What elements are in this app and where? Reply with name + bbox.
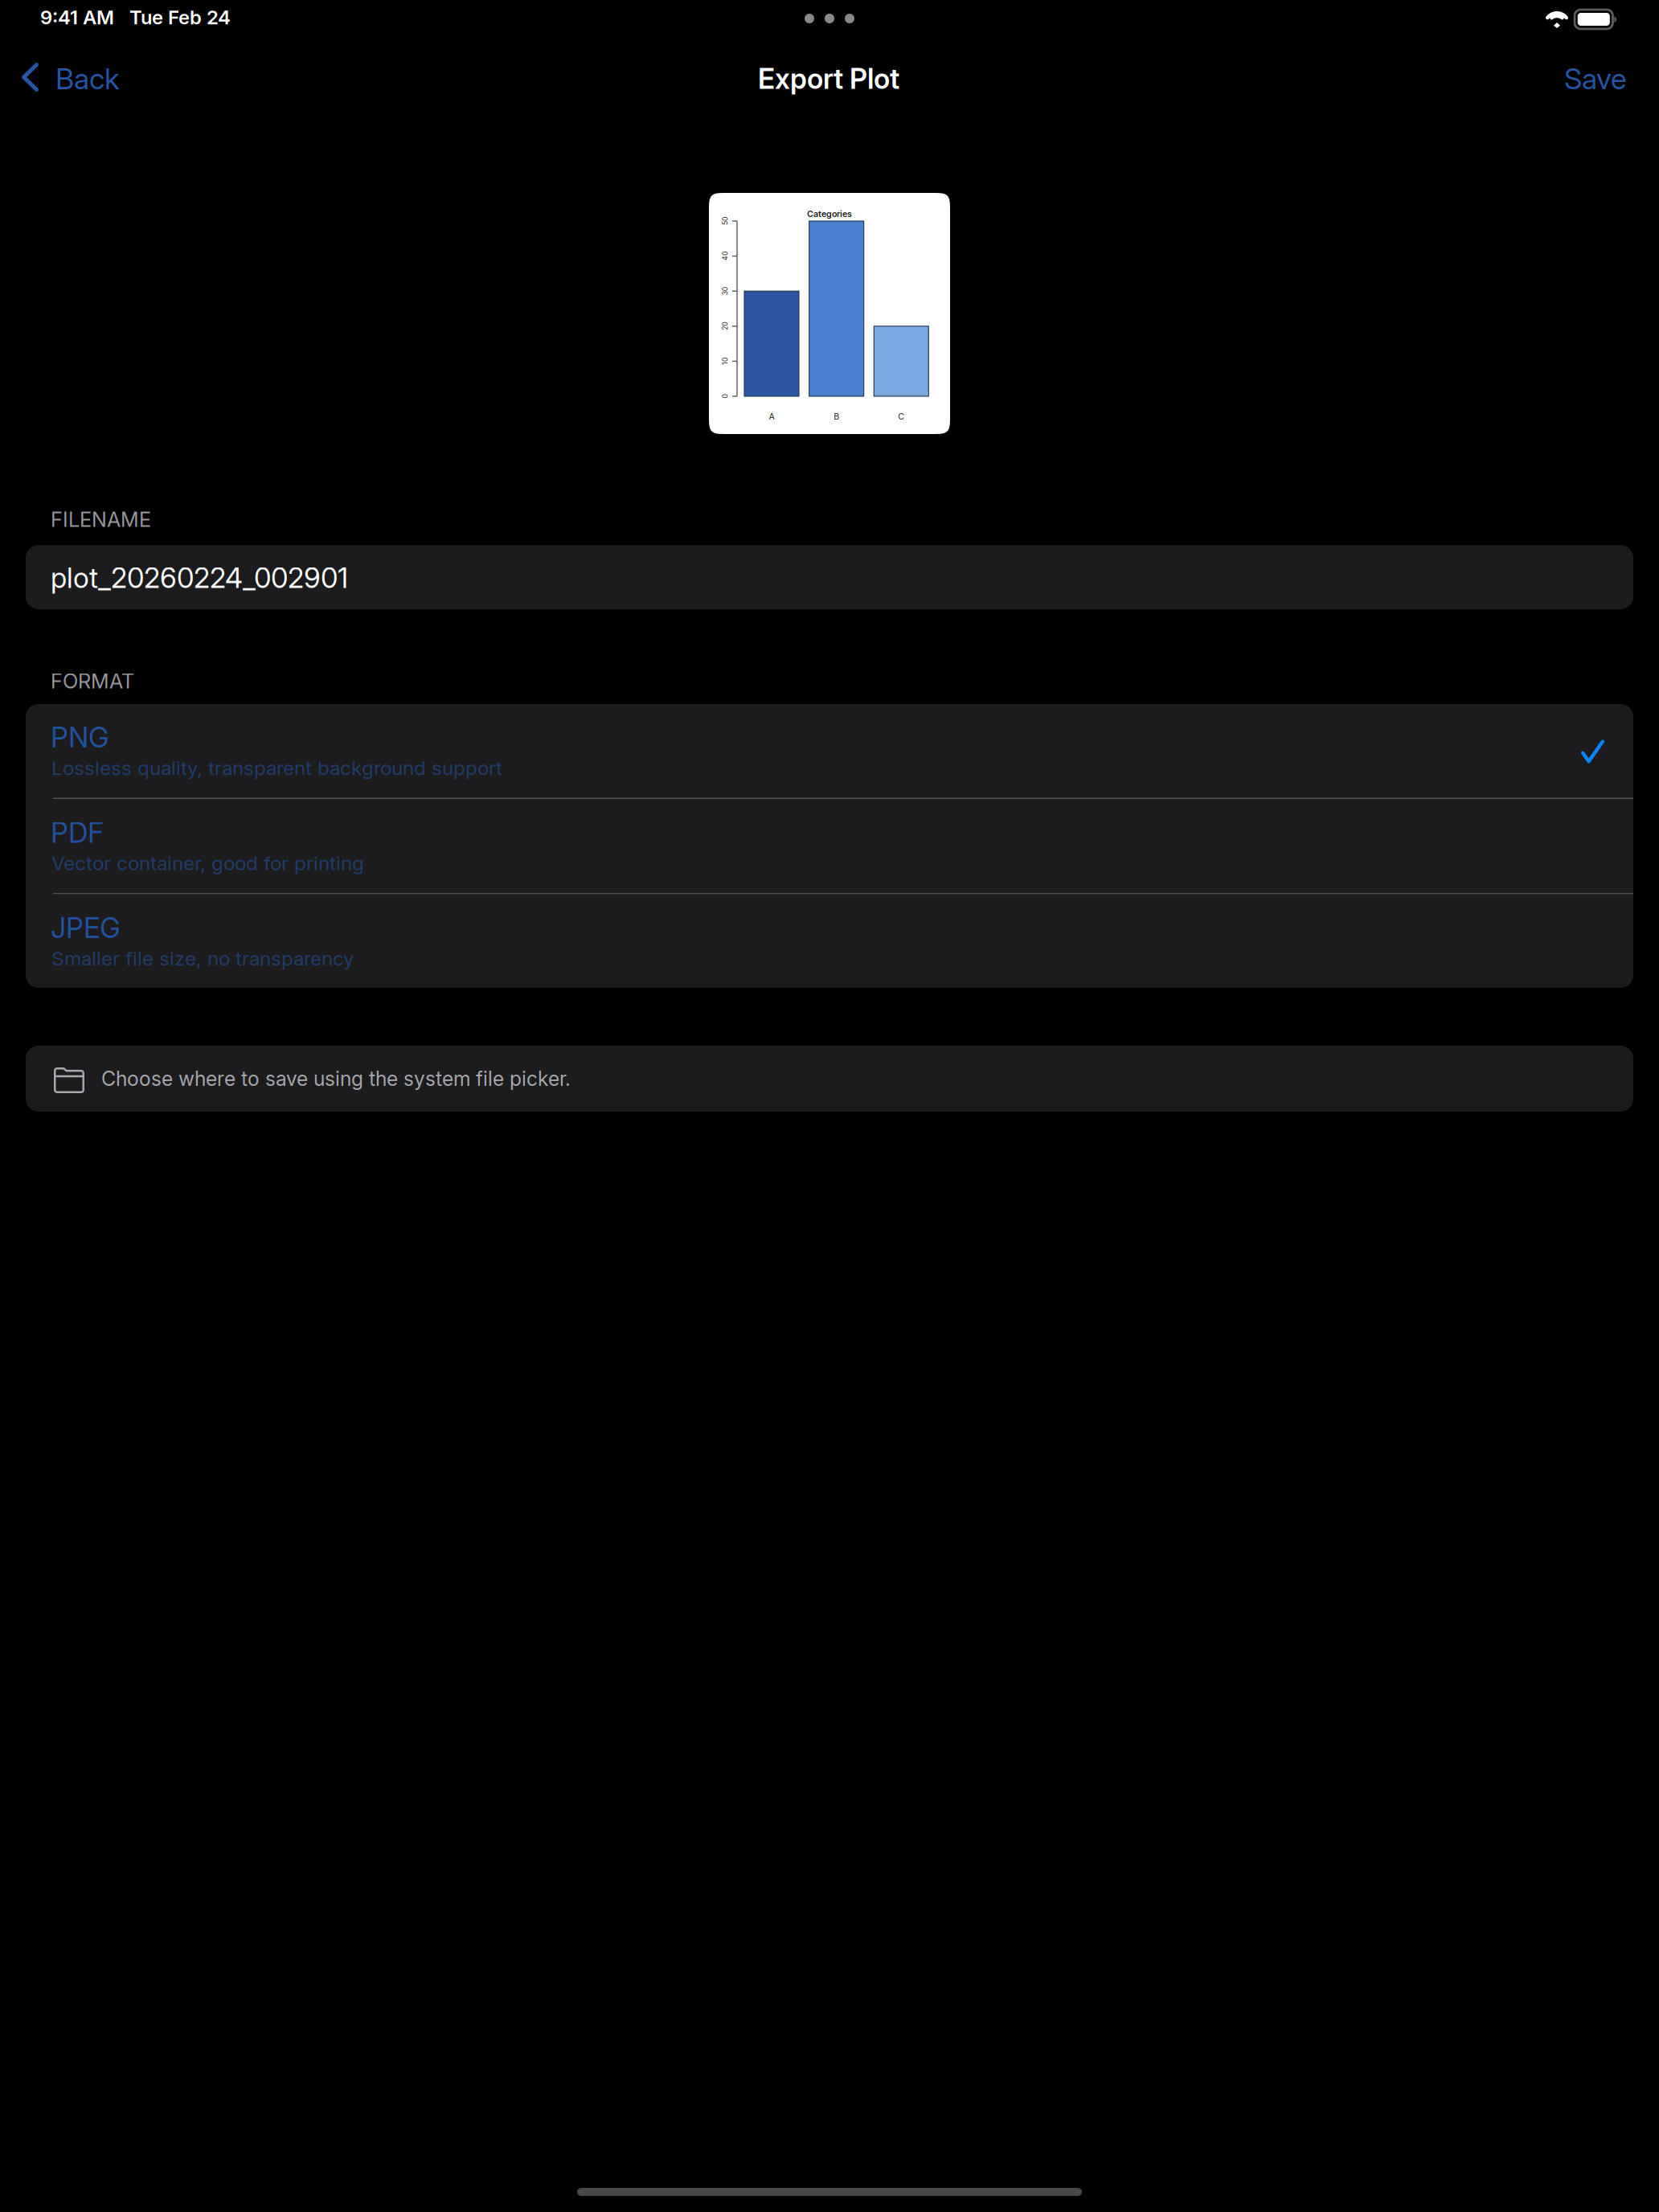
staticText: FORMAT bbox=[51, 669, 134, 693]
button[interactable]: JPEG bbox=[26, 894, 1633, 988]
staticText: Save bbox=[1564, 61, 1627, 96]
staticText: C bbox=[898, 411, 904, 422]
staticText: PDF bbox=[51, 816, 104, 850]
staticText: 20 bbox=[721, 322, 729, 330]
staticText: Categories bbox=[807, 209, 852, 219]
staticText: Back bbox=[55, 61, 120, 96]
staticText: JPEG bbox=[51, 911, 121, 945]
staticText: Vector container, good for printing bbox=[51, 851, 364, 875]
staticText: 0 bbox=[723, 392, 727, 401]
staticText: A bbox=[769, 411, 774, 422]
staticText: Lossless quality, transparent background… bbox=[51, 756, 502, 780]
staticText: Export Plot bbox=[758, 62, 899, 96]
button[interactable]: Back bbox=[0, 47, 137, 109]
staticText: plot_20260224_002901 bbox=[51, 561, 348, 595]
staticText: PNG bbox=[51, 721, 109, 754]
staticText: 10 bbox=[721, 357, 729, 365]
button[interactable]: Choose where to save using the system fi… bbox=[26, 1046, 1633, 1112]
staticText: Smaller file size, no transparency bbox=[51, 946, 354, 970]
staticText: 30 bbox=[721, 287, 729, 295]
button[interactable]: Save bbox=[1542, 47, 1659, 109]
staticText: Choose where to save using the system fi… bbox=[101, 1067, 571, 1091]
staticText: Tue Feb 24 bbox=[129, 6, 231, 29]
button[interactable]: PNG bbox=[26, 704, 1633, 798]
staticText: FILENAME bbox=[51, 507, 151, 532]
staticText: 9:41 AM bbox=[40, 6, 114, 29]
staticText: B bbox=[834, 411, 839, 422]
staticText: 50 bbox=[721, 217, 729, 225]
button[interactable]: PDF bbox=[26, 799, 1633, 893]
staticText: 40 bbox=[721, 252, 729, 260]
